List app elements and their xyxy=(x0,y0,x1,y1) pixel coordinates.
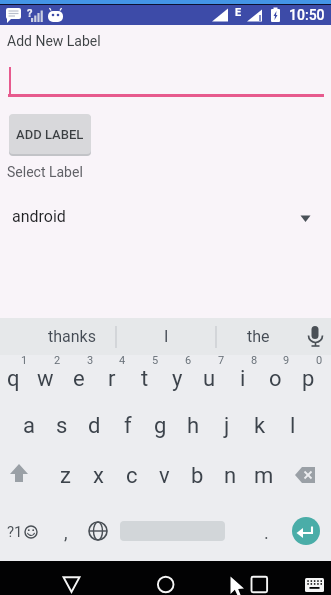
staticText: 4 xyxy=(119,354,126,367)
staticText: p xyxy=(302,366,315,392)
button[interactable]: r xyxy=(95,357,128,401)
staticText: a xyxy=(23,413,35,439)
staticText: android xyxy=(12,207,66,226)
button[interactable]: s xyxy=(45,404,78,448)
button[interactable] xyxy=(301,573,329,595)
staticText: x xyxy=(93,463,104,489)
staticText: 10:50 xyxy=(289,7,325,23)
button[interactable] xyxy=(53,568,90,595)
button[interactable]: d xyxy=(78,404,111,448)
staticText: q xyxy=(7,366,20,392)
staticText: r xyxy=(108,366,116,392)
button[interactable]: , xyxy=(56,514,76,550)
staticText: j xyxy=(224,413,230,439)
button[interactable]: g xyxy=(144,404,177,448)
staticText: d xyxy=(88,413,101,439)
staticText: 2 xyxy=(54,354,61,367)
button[interactable]: t xyxy=(128,357,161,401)
button[interactable] xyxy=(241,568,278,595)
button[interactable]: z xyxy=(49,454,82,498)
staticText: e xyxy=(73,366,85,392)
staticText: h xyxy=(187,413,200,439)
staticText: s xyxy=(56,413,68,439)
staticText: . xyxy=(264,522,269,543)
button[interactable]: thanks xyxy=(40,318,104,355)
button[interactable]: e xyxy=(62,357,95,401)
staticText: y xyxy=(172,366,183,392)
button[interactable]: m xyxy=(247,454,280,498)
button[interactable] xyxy=(300,321,330,353)
staticText: k xyxy=(254,413,266,439)
staticText: o xyxy=(269,366,282,392)
button[interactable]: x xyxy=(82,454,115,498)
staticText: ADD LABEL xyxy=(16,127,84,142)
button[interactable]: l xyxy=(276,404,309,448)
staticText: n xyxy=(224,463,237,489)
button[interactable]: p xyxy=(292,357,325,401)
button[interactable]: k xyxy=(243,404,276,448)
staticText: z xyxy=(60,463,71,489)
button[interactable]: c xyxy=(115,454,148,498)
button[interactable] xyxy=(2,457,36,493)
staticText: 9 xyxy=(283,354,290,367)
staticText: 0 xyxy=(316,354,323,367)
staticText: thanks xyxy=(48,327,96,346)
staticText: c xyxy=(126,463,138,489)
staticText: 8 xyxy=(251,354,258,367)
staticText: u xyxy=(203,366,216,392)
button[interactable]: n xyxy=(214,454,247,498)
staticText: Select Label xyxy=(7,164,83,180)
staticText: 3 xyxy=(87,354,94,367)
staticText: 6 xyxy=(185,354,192,367)
button[interactable] xyxy=(289,457,325,493)
staticText: 7 xyxy=(218,354,225,367)
button[interactable]: the xyxy=(224,318,292,355)
staticText: ?1 xyxy=(7,523,23,541)
staticText: 5 xyxy=(152,354,159,367)
button[interactable]: h xyxy=(177,404,210,448)
staticText: 1 xyxy=(21,354,28,367)
staticText: m xyxy=(254,463,274,489)
staticText: I xyxy=(164,327,169,346)
staticText: ? xyxy=(27,7,33,20)
button[interactable]: j xyxy=(210,404,243,448)
staticText: w xyxy=(37,366,54,392)
button[interactable] xyxy=(86,519,110,545)
button[interactable]: ADD LABEL xyxy=(9,114,91,154)
button[interactable]: y xyxy=(161,357,194,401)
button[interactable] xyxy=(147,568,184,595)
button[interactable]: o xyxy=(259,357,292,401)
staticText: v xyxy=(159,463,170,489)
button[interactable]: b xyxy=(181,454,214,498)
staticText: Add New Label xyxy=(7,33,101,49)
staticText: g xyxy=(154,413,167,439)
staticText: i xyxy=(240,366,246,392)
staticText: b xyxy=(191,463,204,489)
button[interactable]: w xyxy=(29,357,62,401)
staticText: f xyxy=(124,413,132,439)
staticText: the xyxy=(247,327,270,346)
button[interactable]: v xyxy=(148,454,181,498)
button[interactable]: i xyxy=(226,357,259,401)
button[interactable]: android xyxy=(0,196,331,236)
button[interactable]: q xyxy=(0,357,30,401)
button[interactable]: u xyxy=(193,357,226,401)
staticText: t xyxy=(141,366,149,392)
button[interactable]: ?1 xyxy=(2,514,44,550)
button[interactable] xyxy=(292,517,320,545)
staticText: l xyxy=(290,413,296,439)
button[interactable]: I xyxy=(128,318,204,355)
staticText: E xyxy=(235,6,242,19)
button[interactable]: . xyxy=(258,514,274,550)
staticText: , xyxy=(64,522,68,543)
button[interactable]: f xyxy=(111,404,144,448)
button[interactable]: a xyxy=(12,404,45,448)
